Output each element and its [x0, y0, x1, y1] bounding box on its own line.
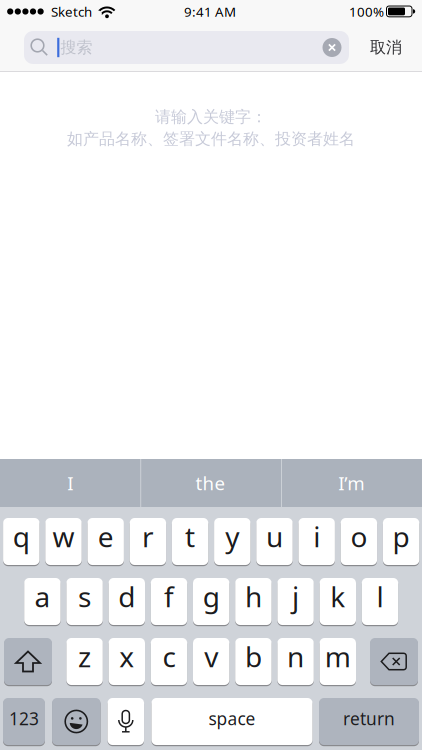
button[interactable]: l: [362, 577, 398, 626]
button[interactable]: y: [214, 517, 250, 566]
button[interactable]: Dictate: [107, 697, 144, 746]
staticText: y: [225, 518, 239, 555]
staticText: n: [287, 638, 304, 675]
staticText: 123: [9, 707, 39, 730]
staticText: c: [162, 638, 175, 675]
button[interactable]: v: [193, 637, 229, 686]
button[interactable]: 取消: [360, 31, 412, 64]
button[interactable]: i: [298, 517, 335, 566]
staticText: 100%: [349, 3, 384, 20]
button[interactable]: r: [130, 517, 166, 566]
button[interactable]: g: [193, 577, 229, 626]
button[interactable]: 清除文本: [322, 38, 341, 57]
staticText: I’m: [338, 471, 364, 495]
button[interactable]: j: [277, 577, 314, 626]
button[interactable]: 搜索: [24, 31, 349, 64]
staticText: m: [325, 638, 351, 675]
staticText: i: [313, 518, 320, 555]
staticText: Sketch: [51, 3, 92, 20]
staticText: r: [142, 518, 154, 555]
staticText: k: [330, 578, 345, 615]
button[interactable]: t: [172, 517, 208, 566]
button[interactable]: x: [109, 637, 145, 686]
staticText: a: [34, 578, 50, 615]
staticText: 取消: [370, 38, 402, 57]
staticText: f: [164, 578, 174, 615]
staticText: v: [204, 638, 218, 675]
staticText: g: [203, 578, 220, 615]
button[interactable]: the: [140, 459, 281, 507]
button[interactable]: c: [151, 637, 187, 686]
button[interactable]: Delete: [370, 637, 418, 686]
staticText: d: [118, 578, 135, 615]
staticText: w: [52, 518, 74, 555]
button[interactable]: k: [320, 577, 356, 626]
button[interactable]: a: [24, 577, 61, 626]
staticText: p: [393, 518, 410, 555]
button[interactable]: Emoji: [52, 697, 100, 746]
staticText: return: [343, 707, 395, 730]
button[interactable]: h: [235, 577, 272, 626]
staticText: t: [185, 518, 195, 555]
staticText: space: [208, 707, 255, 730]
staticText: 9:41 AM: [184, 3, 236, 20]
staticText: b: [245, 638, 262, 675]
staticText: h: [245, 578, 262, 615]
button[interactable]: u: [256, 517, 293, 566]
staticText: s: [78, 578, 91, 615]
staticText: z: [78, 638, 91, 675]
button[interactable]: 123: [3, 697, 45, 746]
staticText: I: [67, 471, 73, 495]
staticText: o: [350, 518, 367, 555]
button[interactable]: s: [66, 577, 103, 626]
staticText: x: [119, 638, 134, 675]
button[interactable]: q: [3, 517, 39, 566]
button[interactable]: space: [151, 697, 312, 746]
button[interactable]: I: [0, 459, 140, 507]
staticText: j: [292, 578, 299, 615]
staticText: 如产品名称、签署文件名称、投资者姓名: [67, 129, 355, 149]
staticText: q: [13, 518, 30, 555]
button[interactable]: e: [87, 517, 124, 566]
button[interactable]: w: [45, 517, 82, 566]
staticText: 搜索: [60, 38, 92, 57]
staticText: e: [98, 518, 114, 555]
button[interactable]: p: [383, 517, 419, 566]
button[interactable]: b: [235, 637, 272, 686]
button[interactable]: I’m: [281, 459, 422, 507]
button[interactable]: Shift: [4, 637, 52, 686]
button[interactable]: n: [277, 637, 314, 686]
staticText: u: [266, 518, 283, 555]
button[interactable]: o: [341, 517, 377, 566]
button[interactable]: z: [66, 637, 103, 686]
button[interactable]: d: [109, 577, 145, 626]
button[interactable]: return: [319, 697, 419, 746]
button[interactable]: m: [320, 637, 356, 686]
staticText: l: [376, 578, 383, 615]
staticText: the: [195, 471, 225, 495]
staticText: 请输入关键字：: [155, 107, 267, 127]
button[interactable]: f: [151, 577, 187, 626]
